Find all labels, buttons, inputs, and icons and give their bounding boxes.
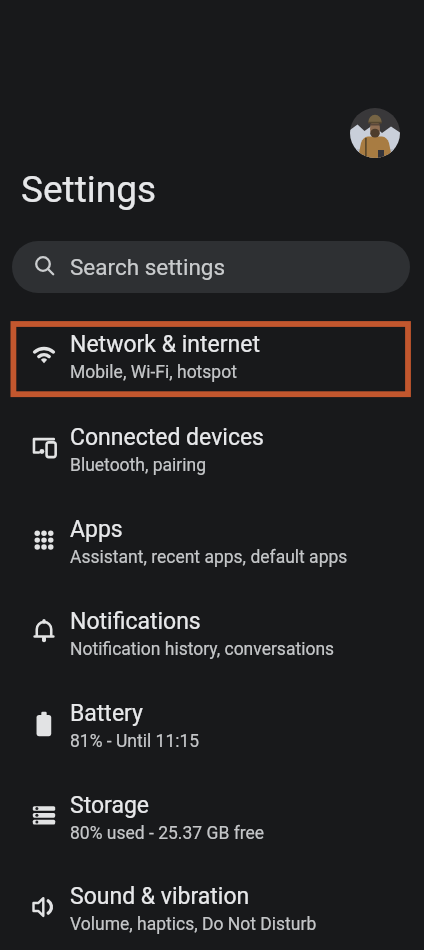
staticText: Network & internet (70, 331, 260, 358)
button[interactable]: Notifications (0, 588, 424, 680)
staticText: Apps (70, 516, 123, 543)
staticText: Sound & vibration (70, 883, 250, 910)
staticText: 81% - Until 11:15 (70, 731, 200, 752)
button[interactable]: Storage (0, 772, 424, 864)
staticText: Settings (21, 168, 157, 211)
staticText: Search settings (70, 254, 226, 280)
button[interactable]: Network & internet (0, 311, 424, 403)
button[interactable]: Connected devices (0, 404, 424, 496)
staticText: Bluetooth, pairing (70, 455, 207, 476)
button[interactable]: Sound & vibration (0, 863, 424, 950)
button[interactable]: Search settings (12, 241, 410, 293)
staticText: Notifications (70, 608, 201, 635)
staticText: Mobile, Wi-Fi, hotspot (70, 362, 237, 383)
button[interactable]: Battery (0, 680, 424, 772)
button[interactable]: Apps (0, 496, 424, 588)
staticText: Assistant, recent apps, default apps (70, 547, 348, 568)
staticText: Storage (70, 792, 150, 819)
staticText: Volume, haptics, Do Not Disturb (70, 914, 317, 935)
staticText: Battery (70, 700, 143, 727)
staticText: Connected devices (70, 424, 264, 451)
button[interactable] (350, 108, 400, 158)
staticText: 80% used - 25.37 GB free (70, 823, 265, 844)
staticText: Notification history, conversations (70, 639, 335, 660)
